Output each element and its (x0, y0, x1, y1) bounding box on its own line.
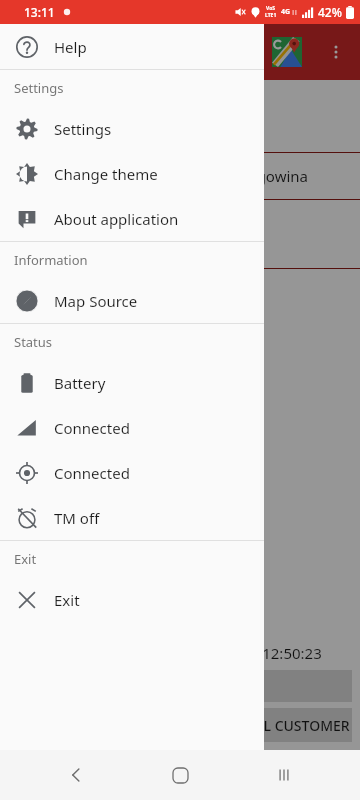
staticText: VoS (266, 5, 276, 12)
button[interactable]: Back (48, 750, 104, 800)
button[interactable] (8, 670, 352, 702)
button[interactable]: CALL CUSTOMER (8, 708, 352, 742)
staticText: Settings (14, 79, 64, 97)
staticText: 4G (281, 7, 291, 17)
button[interactable]: TM off (0, 495, 264, 540)
staticText: Settings (54, 119, 112, 139)
button[interactable]: Settings (0, 106, 264, 151)
staticText: Change theme (54, 164, 158, 184)
staticText: 13:11 (24, 4, 55, 20)
staticText: Map Source (54, 291, 138, 311)
staticText: Exit (54, 590, 80, 610)
button[interactable]: Connected (0, 450, 264, 495)
button[interactable]: Maps (272, 37, 302, 67)
staticText: Help (54, 37, 87, 57)
staticText: About application (54, 209, 179, 229)
button[interactable]: Recent apps (256, 750, 312, 800)
staticText: 2024-05-09 12:50:23 (180, 643, 322, 663)
staticText: Connected (54, 463, 130, 483)
button[interactable]: Change theme (0, 151, 264, 196)
button[interactable]: More options (322, 38, 350, 66)
staticText: Information (14, 251, 88, 269)
button[interactable]: Connected (0, 405, 264, 450)
staticText: Connected (54, 418, 130, 438)
staticText: Exit (14, 550, 37, 568)
button[interactable]: Help (0, 24, 264, 69)
staticText: LTE1 (265, 12, 277, 19)
button[interactable]: Home (152, 750, 208, 800)
staticText: 42% (318, 4, 342, 20)
staticText: CALL CUSTOMER (238, 716, 350, 735)
button[interactable]: Map Source (0, 278, 264, 323)
staticText: Status (14, 333, 53, 351)
staticText: Battery (54, 373, 106, 393)
button[interactable]: Battery (0, 360, 264, 405)
staticText: Bosna i Herzegowina (160, 166, 308, 186)
button[interactable]: About application (0, 196, 264, 241)
button[interactable]: Exit (0, 577, 264, 622)
staticText: TM off (54, 508, 100, 528)
